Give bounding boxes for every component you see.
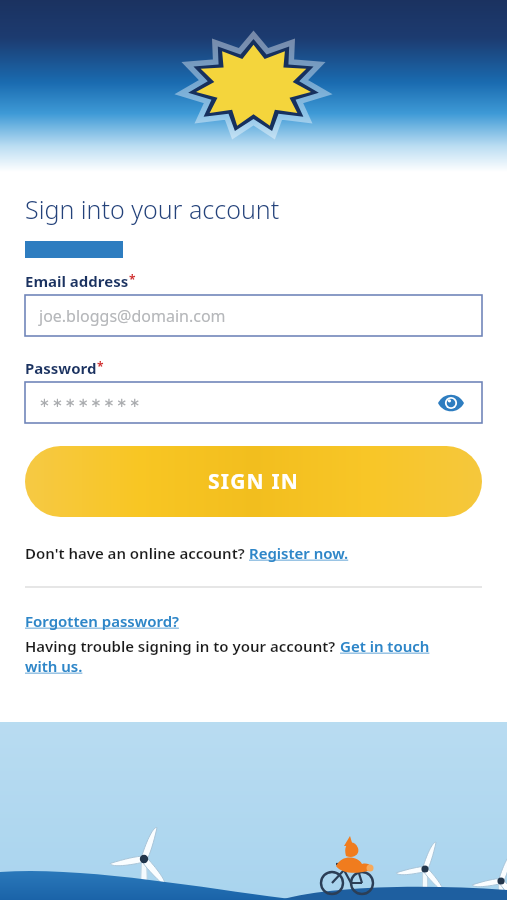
button[interactable]: SIGN IN	[25, 446, 482, 517]
staticText: *	[97, 358, 104, 374]
button[interactable]: Register now.	[249, 543, 349, 563]
staticText: Sign into your account	[25, 192, 280, 226]
button[interactable]: joe.bloggs@domain.com	[25, 295, 482, 336]
staticText: joe.bloggs@domain.com	[39, 305, 226, 327]
staticText: SIGN IN	[208, 467, 300, 496]
staticText: Password	[25, 358, 97, 378]
staticText: *	[129, 271, 136, 287]
staticText: Having trouble signing in to your accoun…	[25, 636, 340, 656]
button[interactable]: Get in touch	[340, 636, 430, 656]
staticText: Don't have an online account?	[25, 543, 249, 563]
button[interactable]: Forgotten password?	[25, 611, 179, 631]
staticText: Email address	[25, 271, 129, 291]
button[interactable]: Show password	[436, 388, 466, 418]
button[interactable]: with us.	[25, 656, 83, 676]
staticText: ∗∗∗∗∗∗∗∗	[39, 395, 143, 410]
button[interactable]: ∗∗∗∗∗∗∗∗	[25, 382, 482, 423]
